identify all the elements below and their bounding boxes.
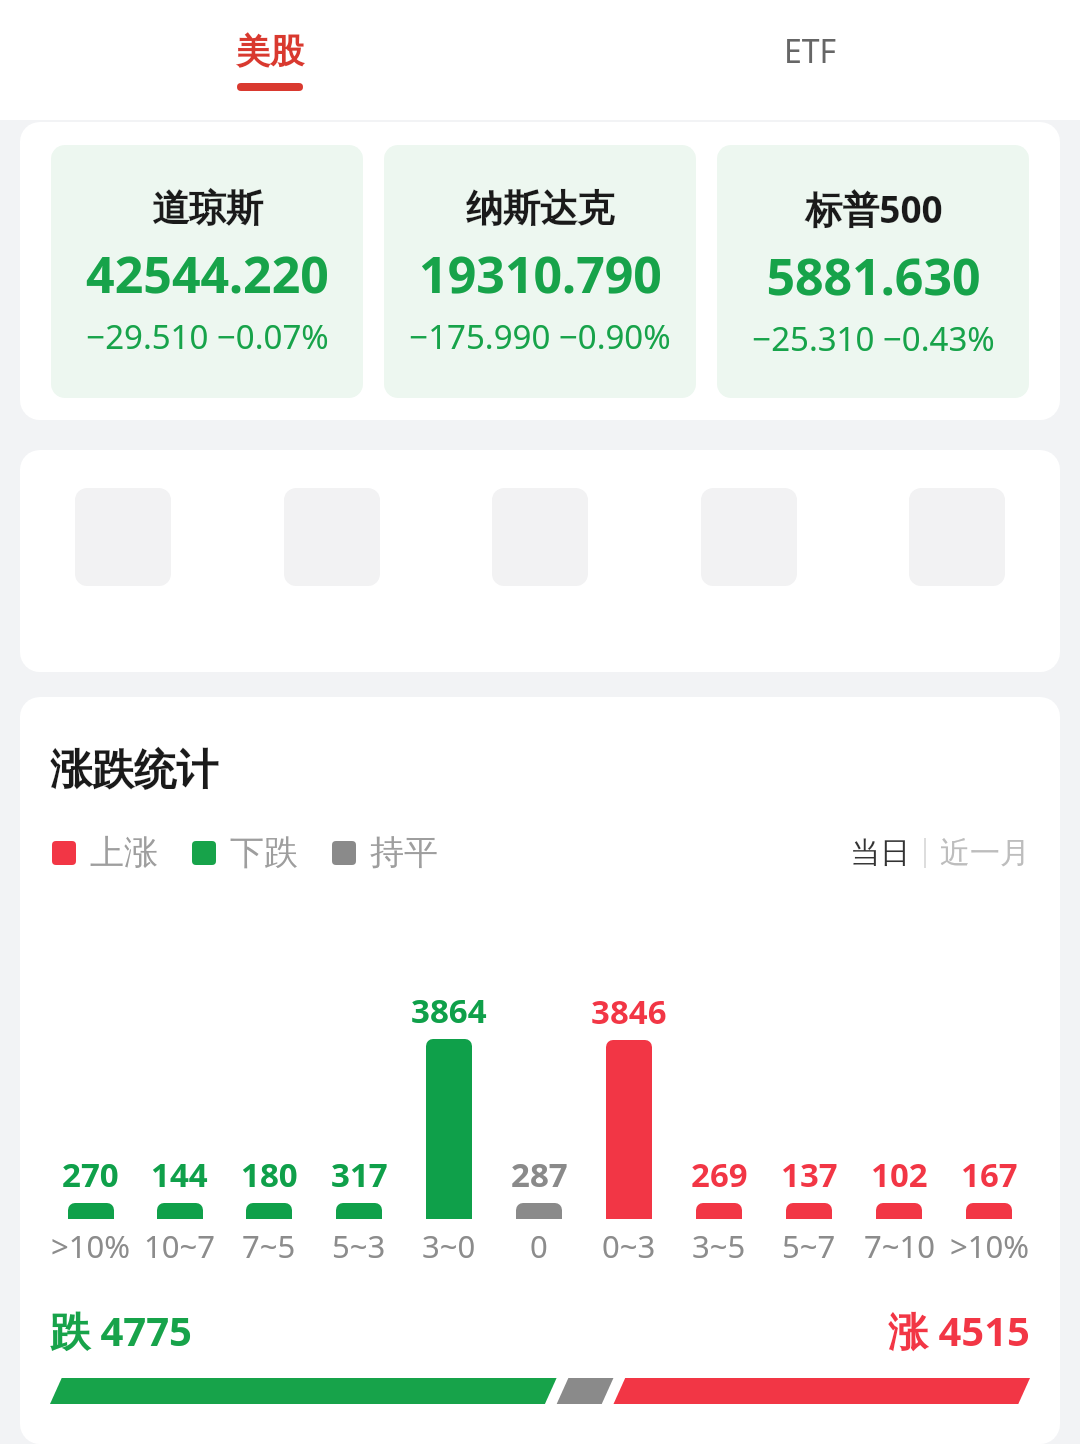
button[interactable]: 当日 [850, 834, 910, 872]
button[interactable]: 137 [764, 1152, 854, 1267]
button[interactable]: 3846 [584, 989, 674, 1267]
staticText: −25.310 −0.43% [752, 316, 995, 361]
staticText: 7~10 [864, 1225, 935, 1267]
staticText: 涨跌统计 [50, 744, 218, 797]
button[interactable]: ETF [540, 0, 1080, 120]
staticText: 269 [691, 1152, 748, 1197]
staticText: 7~5 [242, 1225, 296, 1267]
staticText: 5881.630 [766, 242, 981, 310]
button[interactable]: 102 [854, 1152, 944, 1267]
staticText: 3~0 [422, 1225, 476, 1267]
button[interactable]: 180 [224, 1152, 314, 1267]
staticText: 42544.220 [86, 240, 329, 308]
button[interactable]: 317 [314, 1152, 404, 1267]
button[interactable]: 269 [674, 1152, 764, 1267]
staticText: −175.990 −0.90% [409, 314, 671, 359]
button[interactable]: 3864 [404, 988, 494, 1267]
staticText: 102 [871, 1152, 928, 1197]
staticText: 5~7 [782, 1225, 836, 1267]
button[interactable]: 持平 [332, 831, 438, 874]
staticText: 上涨 [90, 831, 158, 874]
staticText: 0 [530, 1225, 548, 1267]
staticText: 270 [62, 1152, 119, 1197]
button[interactable] [50, 1378, 1030, 1404]
staticText: 道琼斯 [152, 185, 263, 232]
staticText: 317 [331, 1152, 388, 1197]
staticText: 167 [961, 1152, 1018, 1197]
staticText: 19310.790 [419, 240, 662, 308]
staticText: 10~7 [144, 1225, 215, 1267]
staticText: 137 [781, 1152, 838, 1197]
staticText: 180 [241, 1152, 298, 1197]
staticText: 5~3 [332, 1225, 386, 1267]
staticText: 0~3 [602, 1225, 656, 1267]
staticText: 纳斯达克 [466, 185, 614, 232]
staticText: 144 [151, 1152, 208, 1197]
staticText: 跌 4775 [50, 1303, 192, 1358]
button[interactable]: 270 [46, 1152, 135, 1267]
staticText: ETF [784, 29, 837, 73]
button[interactable]: 下跌 [192, 831, 298, 874]
button[interactable]: 美股 [0, 0, 540, 120]
staticText: >10% [51, 1225, 130, 1267]
staticText: 近一月 [940, 834, 1030, 872]
button[interactable]: 纳斯达克 [384, 145, 696, 398]
staticText: 3846 [591, 989, 667, 1034]
staticText: 3864 [411, 988, 487, 1033]
staticText: >10% [950, 1225, 1029, 1267]
button[interactable]: 上涨 [52, 831, 158, 874]
button[interactable]: 287 [494, 1152, 584, 1267]
staticText: −29.510 −0.07% [86, 314, 329, 359]
staticText: 下跌 [230, 831, 298, 874]
staticText: 287 [511, 1152, 568, 1197]
staticText: 美股 [236, 30, 304, 73]
staticText: 涨 4515 [888, 1303, 1030, 1358]
staticText: 持平 [370, 831, 438, 874]
button[interactable]: 144 [135, 1152, 224, 1267]
staticText: 当日 [850, 834, 910, 872]
button[interactable]: 道琼斯 [51, 145, 363, 398]
button[interactable]: 167 [944, 1152, 1034, 1267]
button[interactable]: 标普500 [717, 145, 1029, 398]
button[interactable]: 近一月 [940, 834, 1030, 872]
staticText: 标普500 [805, 183, 943, 234]
staticText: 3~5 [692, 1225, 746, 1267]
